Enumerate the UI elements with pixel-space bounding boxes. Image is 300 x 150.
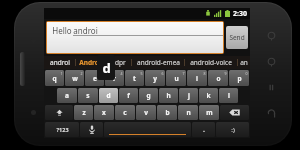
staticText: d bbox=[106, 91, 111, 100]
button[interactable]: android-emea bbox=[132, 56, 184, 69]
staticText: w bbox=[72, 74, 78, 83]
staticText: androi bbox=[73, 25, 98, 36]
button[interactable]: Delete bbox=[220, 105, 249, 120]
staticText: a bbox=[65, 91, 69, 100]
staticText: v bbox=[144, 108, 148, 117]
button[interactable]: Voice input bbox=[80, 122, 103, 137]
staticText: 5 bbox=[140, 71, 143, 76]
button[interactable]: k bbox=[199, 88, 218, 103]
staticText: :) bbox=[231, 126, 235, 134]
staticText: d bbox=[102, 59, 111, 77]
staticText: x bbox=[102, 108, 106, 117]
button[interactable]: l bbox=[219, 88, 238, 103]
button[interactable]: i bbox=[187, 70, 207, 86]
staticText: b bbox=[165, 108, 170, 117]
staticText: 8 bbox=[203, 71, 206, 76]
staticText: i bbox=[196, 74, 198, 83]
button[interactable]: ?123 bbox=[45, 122, 79, 137]
button[interactable]: Shift bbox=[45, 105, 73, 120]
button[interactable]: h bbox=[159, 88, 178, 103]
button[interactable]: Menu bbox=[263, 53, 279, 69]
button[interactable]: q bbox=[45, 70, 64, 86]
staticText: j bbox=[188, 91, 190, 100]
button[interactable]: c bbox=[115, 105, 135, 120]
button[interactable]: Send bbox=[226, 26, 248, 49]
staticText: z bbox=[82, 108, 86, 117]
button[interactable]: g bbox=[139, 88, 158, 103]
button[interactable]: :) bbox=[216, 122, 249, 137]
staticText: c bbox=[123, 108, 127, 117]
staticText: oidpr bbox=[109, 58, 126, 67]
button[interactable]: android-voice bbox=[185, 56, 237, 69]
staticText: f bbox=[127, 91, 130, 100]
staticText: 7 bbox=[182, 71, 185, 76]
staticText: androi bbox=[50, 58, 70, 67]
button[interactable]: j bbox=[179, 88, 198, 103]
button[interactable]: t bbox=[125, 70, 144, 86]
button[interactable]: y bbox=[145, 70, 165, 86]
staticText: h bbox=[166, 91, 171, 100]
button[interactable]: z bbox=[74, 105, 93, 120]
button[interactable]: f bbox=[119, 88, 138, 103]
staticText: ?123 bbox=[56, 126, 69, 133]
staticText: 4 bbox=[120, 71, 123, 76]
button[interactable]: . bbox=[192, 122, 215, 137]
button[interactable]: n bbox=[178, 105, 198, 120]
button[interactable]: androi bbox=[44, 56, 75, 69]
button[interactable]: b bbox=[157, 105, 177, 120]
button[interactable]: x bbox=[94, 105, 114, 120]
staticText: k bbox=[206, 91, 211, 100]
button[interactable]: r bbox=[105, 70, 124, 86]
staticText: y bbox=[153, 74, 157, 83]
staticText: t bbox=[133, 74, 136, 83]
staticText: Andro bbox=[79, 58, 99, 67]
button[interactable]: e bbox=[85, 70, 104, 86]
button[interactable]: Andro bbox=[76, 56, 102, 69]
button[interactable]: Back bbox=[263, 27, 279, 43]
other: Shift bbox=[45, 105, 73, 120]
staticText: 2 bbox=[80, 71, 83, 76]
button[interactable]: o bbox=[208, 70, 228, 86]
staticText: r bbox=[113, 74, 116, 83]
staticText: 6 bbox=[161, 71, 164, 76]
staticText: s bbox=[86, 91, 90, 100]
staticText: 2:30 bbox=[233, 9, 247, 19]
staticText: Hello bbox=[51, 25, 73, 36]
button[interactable]: a bbox=[57, 88, 77, 103]
button[interactable]: oidpr bbox=[103, 56, 131, 69]
staticText: u bbox=[174, 74, 179, 83]
button[interactable]: s bbox=[78, 88, 98, 103]
staticText: android-voice bbox=[190, 58, 232, 67]
staticText: 0 bbox=[245, 71, 248, 76]
staticText: an bbox=[240, 58, 248, 67]
other: Delete bbox=[220, 105, 249, 120]
other: Voice input bbox=[80, 122, 103, 137]
staticText: l bbox=[228, 91, 230, 100]
button[interactable]: d bbox=[99, 88, 118, 103]
staticText: 1 bbox=[60, 71, 63, 76]
staticText: g bbox=[146, 91, 151, 100]
staticText: Send bbox=[229, 33, 245, 42]
staticText: q bbox=[52, 74, 57, 83]
staticText: n bbox=[186, 108, 191, 117]
button[interactable]: p bbox=[229, 70, 249, 86]
staticText: e bbox=[93, 74, 97, 83]
button[interactable]: u bbox=[166, 70, 186, 86]
staticText: 9 bbox=[224, 71, 227, 76]
staticText: android-emea bbox=[137, 58, 180, 67]
button[interactable]: Hello bbox=[47, 22, 223, 53]
staticText: o bbox=[216, 74, 221, 83]
button[interactable]: w bbox=[65, 70, 84, 86]
staticText: p bbox=[237, 74, 242, 83]
button[interactable]: an bbox=[238, 56, 250, 69]
button[interactable]: v bbox=[136, 105, 156, 120]
button[interactable]: m bbox=[199, 105, 219, 120]
button[interactable]: Space bbox=[104, 122, 191, 137]
staticText: . bbox=[203, 125, 205, 135]
button[interactable]: Home bbox=[263, 79, 279, 95]
staticText: m bbox=[206, 108, 213, 117]
button[interactable]: Search bbox=[263, 105, 279, 121]
